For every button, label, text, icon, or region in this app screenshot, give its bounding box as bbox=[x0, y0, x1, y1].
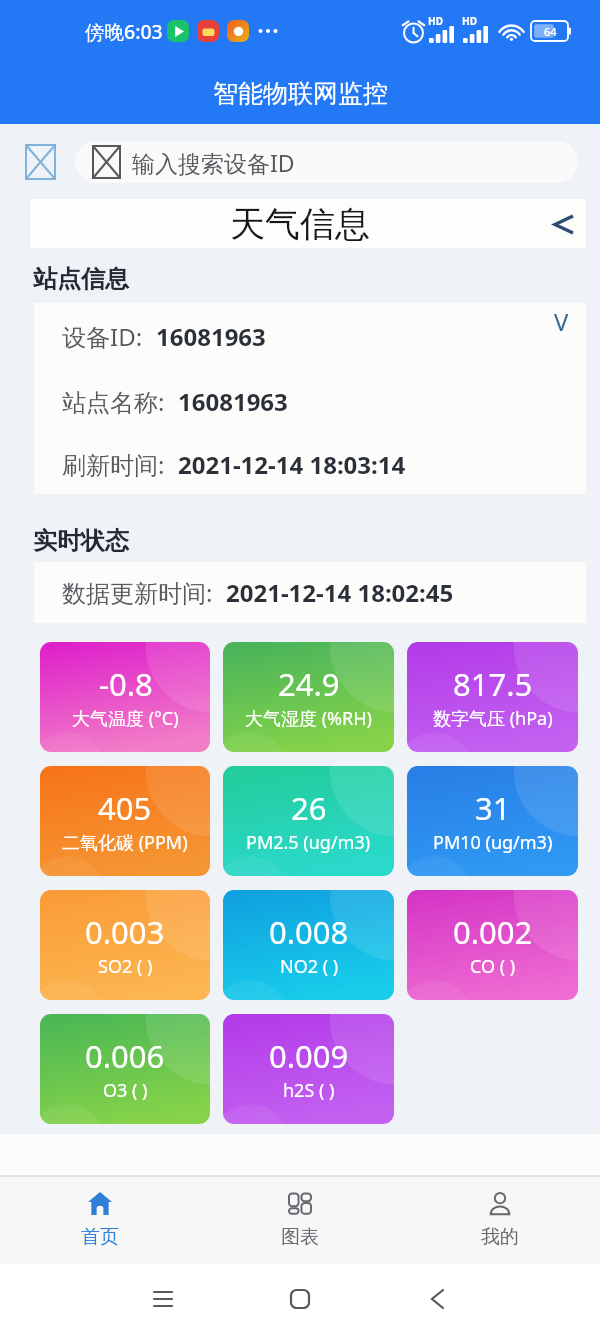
staticText: 大气温度 (°C) bbox=[72, 706, 179, 731]
staticText: O3 ( ) bbox=[103, 1078, 148, 1103]
staticText: HD bbox=[428, 14, 443, 28]
staticText: 大气湿度 (%RH) bbox=[245, 706, 372, 731]
staticText: 0.003 bbox=[85, 911, 165, 953]
button[interactable]: Home bbox=[272, 1271, 328, 1327]
button[interactable]: Recents bbox=[135, 1271, 191, 1327]
staticText: 817.5 bbox=[453, 663, 533, 705]
staticText: 二氧化碳 (PPM) bbox=[62, 830, 188, 855]
button[interactable]: 817.5 bbox=[407, 642, 578, 752]
staticText: 傍晚6:03 bbox=[85, 18, 163, 45]
staticText: 天气信息 bbox=[230, 202, 370, 246]
staticText: PM2.5 (ug/m3) bbox=[246, 830, 371, 855]
staticText: 站点信息 bbox=[33, 264, 129, 294]
staticText: h2S ( ) bbox=[283, 1078, 335, 1103]
staticText: 站点名称: bbox=[62, 385, 165, 418]
staticText: 数字气压 (hPa) bbox=[433, 706, 553, 731]
staticText: 输入搜索设备ID bbox=[132, 147, 295, 178]
button[interactable]: -0.8 bbox=[40, 642, 210, 752]
staticText: 0.008 bbox=[269, 911, 349, 953]
staticText: 0.006 bbox=[85, 1035, 165, 1077]
staticText: 实时状态 bbox=[33, 526, 129, 556]
button[interactable]: 0.006 bbox=[40, 1014, 210, 1124]
button[interactable]: 26 bbox=[223, 766, 394, 876]
staticText: V bbox=[554, 305, 569, 337]
staticText: 24.9 bbox=[278, 663, 340, 705]
staticText: 图表 bbox=[281, 1225, 319, 1249]
staticText: 405 bbox=[98, 787, 152, 829]
staticText: -0.8 bbox=[99, 663, 153, 705]
button[interactable]: 首页 bbox=[0, 1176, 200, 1264]
other: Logo bbox=[26, 145, 55, 179]
staticText: SO2 ( ) bbox=[98, 954, 153, 979]
staticText: 26 bbox=[291, 787, 327, 829]
button[interactable]: Back bbox=[409, 1271, 465, 1327]
button[interactable]: 405 bbox=[40, 766, 210, 876]
staticText: 16081963 bbox=[178, 385, 288, 418]
button[interactable]: 0.009 bbox=[223, 1014, 394, 1124]
staticText: 0.009 bbox=[269, 1035, 349, 1077]
staticText: HD bbox=[462, 14, 477, 28]
button[interactable]: 0.008 bbox=[223, 890, 394, 1000]
staticText: 31 bbox=[475, 787, 511, 829]
button[interactable]: 24.9 bbox=[223, 642, 394, 752]
staticText: CO ( ) bbox=[470, 954, 516, 979]
button[interactable]: Back bbox=[549, 209, 579, 239]
staticText: 16081963 bbox=[156, 320, 266, 353]
staticText: 智能物联网监控 bbox=[213, 78, 388, 109]
button[interactable]: 0.002 bbox=[407, 890, 578, 1000]
staticText: 首页 bbox=[81, 1225, 119, 1249]
staticText: 我的 bbox=[481, 1225, 519, 1249]
button[interactable]: 输入搜索设备ID bbox=[75, 141, 578, 183]
staticText: 64 bbox=[544, 24, 557, 39]
staticText: PM10 (ug/m3) bbox=[433, 830, 553, 855]
button[interactable]: 图表 bbox=[200, 1176, 400, 1264]
staticText: NO2 ( ) bbox=[280, 954, 339, 979]
button[interactable]: Expand bbox=[545, 305, 577, 337]
staticText: 2021-12-14 18:02:45 bbox=[226, 576, 454, 609]
staticText: 数据更新时间: bbox=[62, 576, 213, 609]
staticText: 0.002 bbox=[453, 911, 533, 953]
button[interactable]: 31 bbox=[407, 766, 578, 876]
button[interactable]: 0.003 bbox=[40, 890, 210, 1000]
button[interactable]: 我的 bbox=[400, 1176, 600, 1264]
staticText: 刷新时间: bbox=[62, 448, 165, 481]
staticText: 设备ID: bbox=[62, 320, 143, 353]
staticText: 2021-12-14 18:03:14 bbox=[178, 448, 406, 481]
